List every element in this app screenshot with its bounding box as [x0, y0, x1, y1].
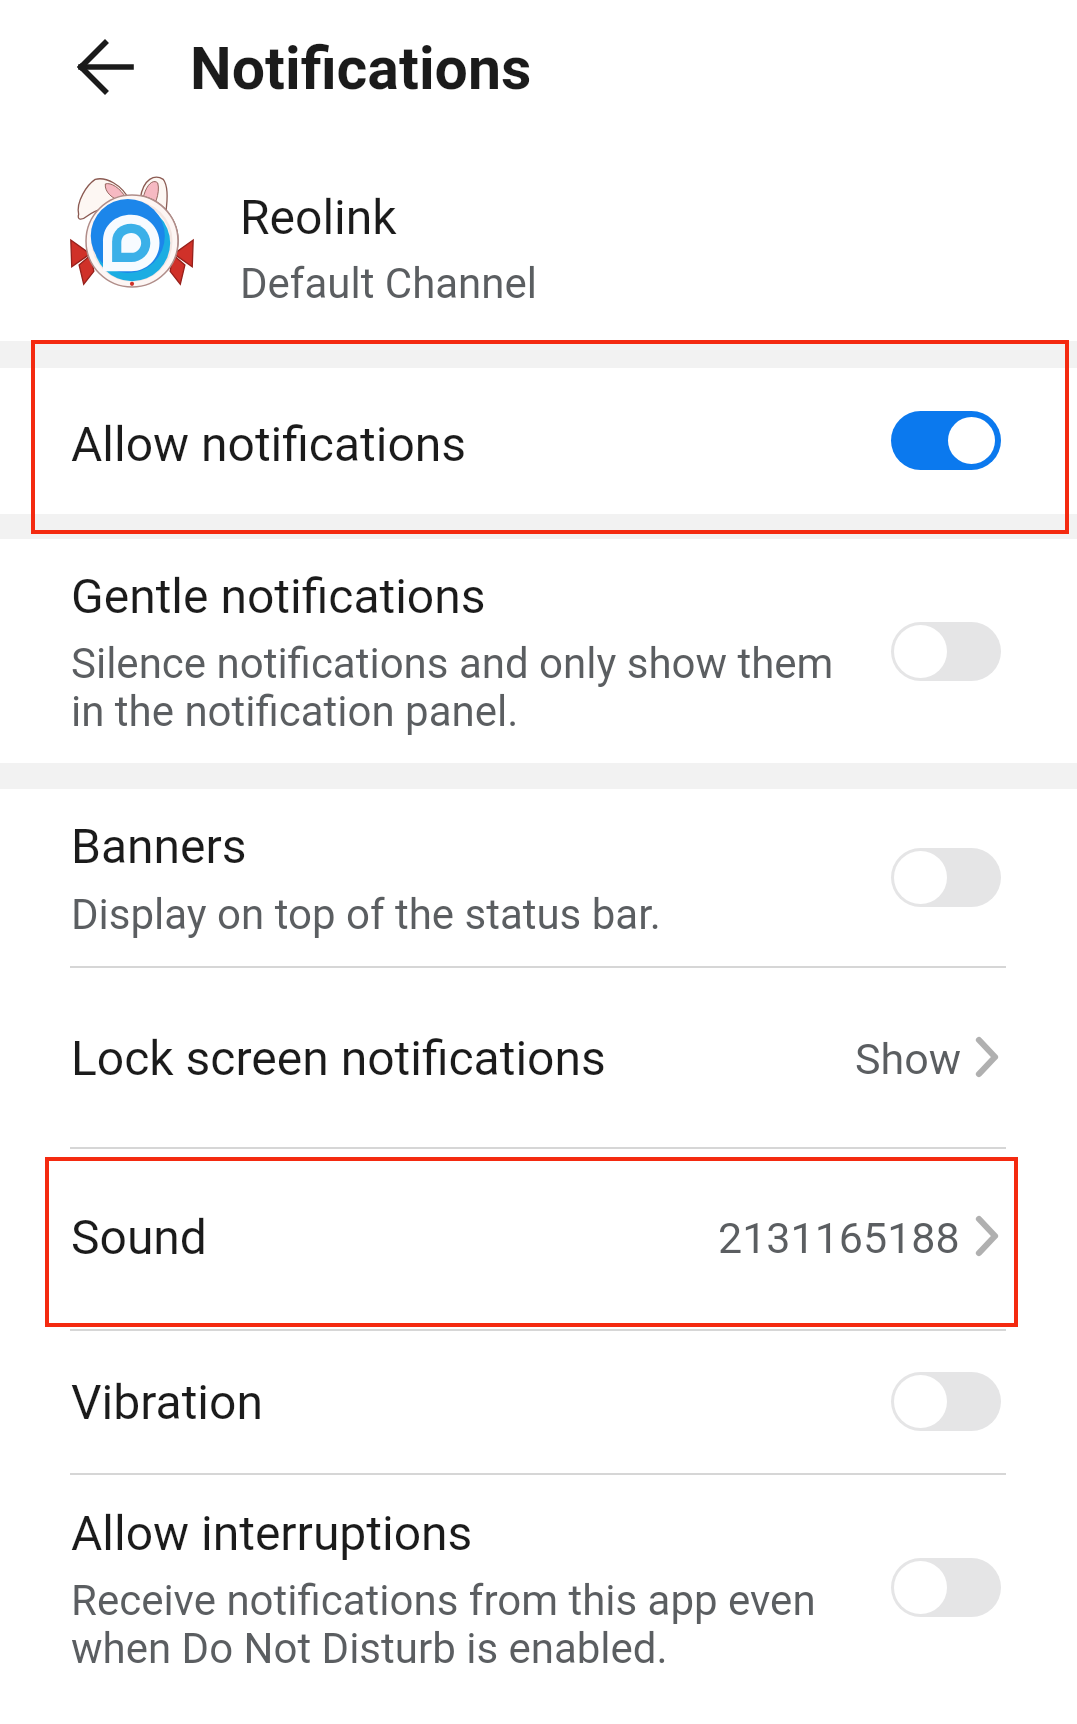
staticText: Vibration: [71, 1374, 263, 1430]
button[interactable]: Allow notifications, on: [891, 411, 1001, 470]
staticText: Show: [855, 1034, 962, 1084]
button[interactable]: Vibration: [0, 1330, 1077, 1472]
button[interactable]: Allow notifications: [0, 368, 1077, 514]
button[interactable]: Banners: [0, 789, 1077, 965]
button[interactable]: Banners, off: [891, 848, 1001, 907]
button[interactable]: Allow interruptions: [0, 1474, 1077, 1700]
other: Open lock screen notifications: [976, 1037, 998, 1077]
button[interactable]: Sound: [0, 1148, 1077, 1328]
staticText: Notifications: [190, 34, 532, 103]
staticText: Receive notifications from this app even…: [71, 1576, 816, 1673]
button[interactable]: Lock screen notifications: [0, 967, 1077, 1146]
button[interactable]: [0, 137, 1077, 341]
staticText: Allow notifications: [71, 416, 467, 472]
staticText: Display on top of the status bar.: [71, 890, 661, 939]
staticText: Silence notifications and only show them…: [71, 639, 834, 736]
button[interactable]: Back: [63, 24, 149, 110]
staticText: Banners: [71, 818, 247, 874]
staticText: Sound: [71, 1209, 207, 1265]
staticText: Default Channel: [240, 259, 537, 308]
staticText: Lock screen notifications: [71, 1030, 606, 1086]
staticText: Gentle notifications: [71, 568, 486, 624]
button[interactable]: Gentle notifications: [0, 539, 1077, 763]
staticText: 2131165188: [718, 1213, 960, 1263]
button[interactable]: Allow interruptions, off: [891, 1558, 1001, 1617]
staticText: Reolink: [240, 189, 397, 245]
other: Open sound settings: [976, 1216, 998, 1256]
button[interactable]: Gentle notifications, off: [891, 622, 1001, 681]
staticText: Allow interruptions: [71, 1505, 473, 1561]
button[interactable]: Vibration, off: [891, 1372, 1001, 1431]
